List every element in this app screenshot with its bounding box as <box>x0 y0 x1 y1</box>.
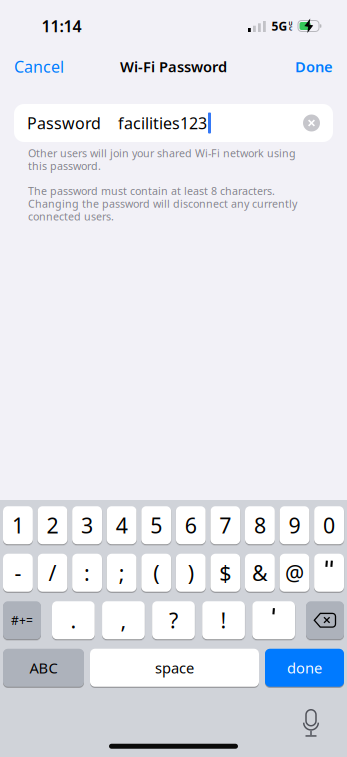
staticText: 5 <box>150 511 162 539</box>
button[interactable]: 1 <box>3 506 33 544</box>
staticText: 3 <box>81 511 93 539</box>
button[interactable]: 9 <box>280 506 309 544</box>
staticText: ! <box>221 606 227 634</box>
button[interactable]: Done <box>295 57 333 76</box>
staticText: 7 <box>219 511 231 539</box>
button[interactable]: Cancel <box>14 56 64 77</box>
staticText: Wi-Fi Password <box>120 57 227 76</box>
staticText: Changing the password will disconnect an… <box>28 196 297 211</box>
button[interactable]: 5 <box>141 506 171 544</box>
button[interactable]: 3 <box>72 506 102 544</box>
button[interactable]: 8 <box>245 506 275 544</box>
button[interactable]: Password field <box>14 104 333 142</box>
button[interactable]: : <box>72 554 102 592</box>
staticText: $ <box>219 559 231 587</box>
button[interactable]: 7 <box>210 506 240 544</box>
button[interactable]: / <box>38 554 67 592</box>
button[interactable]: ; <box>107 554 137 592</box>
button[interactable]: Clear text <box>303 114 320 131</box>
staticText: 5G <box>271 18 287 34</box>
button[interactable]: done <box>265 649 344 687</box>
button[interactable]: 4 <box>107 506 137 544</box>
staticText: done <box>287 658 322 677</box>
button[interactable]: Dictation <box>303 710 319 736</box>
staticText: ? <box>169 606 178 634</box>
button[interactable]: @ <box>280 554 309 592</box>
staticText: : <box>84 559 90 587</box>
staticText: Done <box>295 57 333 76</box>
staticText: ; <box>119 559 125 587</box>
staticText: C <box>289 25 292 32</box>
staticText: connected users. <box>28 209 114 223</box>
button[interactable]: ? <box>152 601 195 639</box>
staticText: & <box>252 559 268 587</box>
staticText: facilities123 <box>118 112 207 134</box>
button[interactable]: 0 <box>314 506 344 544</box>
staticText: ) <box>188 559 194 587</box>
button[interactable]: Double quote <box>314 554 344 592</box>
staticText: 11:14 <box>41 15 81 37</box>
staticText: #+= <box>11 612 33 628</box>
staticText: ( <box>153 559 159 587</box>
staticText: @ <box>285 559 304 587</box>
staticText: 2 <box>46 511 58 539</box>
button[interactable]: Apostrophe <box>252 601 295 639</box>
staticText: 0 <box>323 511 335 539</box>
button[interactable]: Delete <box>306 601 344 639</box>
staticText: U <box>288 20 292 27</box>
staticText: Other users will join your shared Wi-Fi … <box>28 146 296 160</box>
button[interactable]: ) <box>176 554 206 592</box>
staticText: space <box>155 658 194 677</box>
button[interactable]: , <box>102 601 145 639</box>
staticText: Cancel <box>14 56 64 77</box>
staticText: 1 <box>12 511 24 539</box>
staticText: . <box>70 606 76 634</box>
staticText: 6 <box>185 511 197 539</box>
button[interactable]: . <box>52 601 95 639</box>
staticText: 8 <box>254 511 266 539</box>
button[interactable]: $ <box>210 554 240 592</box>
staticText: 4 <box>116 511 128 539</box>
staticText: / <box>48 559 56 587</box>
button[interactable]: ! <box>202 601 245 639</box>
staticText: - <box>14 559 21 587</box>
button[interactable]: 6 <box>176 506 206 544</box>
button[interactable]: & <box>245 554 275 592</box>
button[interactable]: - <box>3 554 33 592</box>
button[interactable]: ABC <box>3 649 84 687</box>
staticText: , <box>120 606 126 634</box>
button[interactable]: space <box>90 649 259 687</box>
button[interactable]: #+= <box>3 601 41 639</box>
button[interactable]: 2 <box>38 506 67 544</box>
staticText: ABC <box>29 658 57 677</box>
staticText: 9 <box>288 511 300 539</box>
staticText: The password must contain at least 8 cha… <box>28 184 275 198</box>
staticText: this password. <box>28 159 101 173</box>
staticText: Password <box>27 112 101 134</box>
button[interactable]: ( <box>141 554 171 592</box>
